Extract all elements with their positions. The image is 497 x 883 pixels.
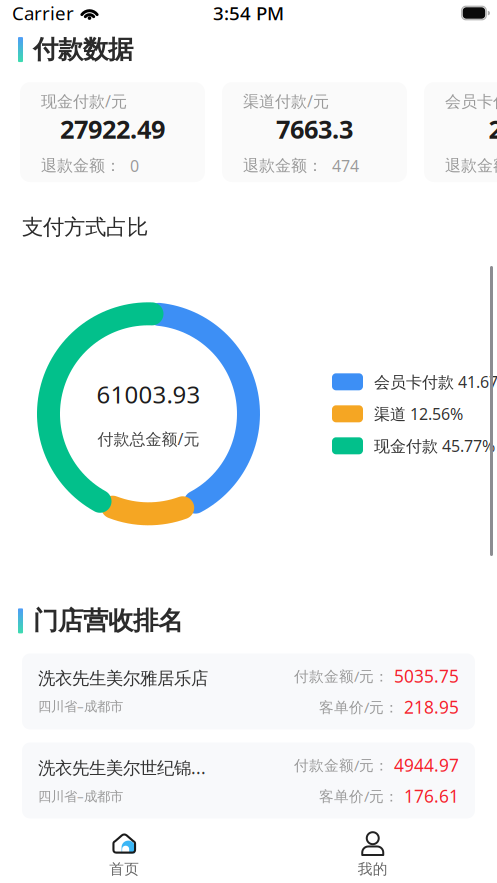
staticText: 218.95 (404, 695, 459, 718)
staticText: 5035.75 (394, 664, 459, 687)
staticText: 会员卡付款 41.67% (374, 371, 497, 392)
staticText: 0 (130, 155, 139, 176)
staticText: 会员卡付款/元 (445, 90, 497, 112)
staticText: 现金付款 45.77% (374, 435, 495, 456)
staticText: 洗衣先生美尔雅居乐店 (38, 668, 208, 689)
staticText: 客单价/元： (319, 697, 399, 717)
staticText: 四川省–成都市 (38, 697, 123, 715)
staticText: 付款数据 (33, 34, 133, 65)
staticText: 现金付款/元 (41, 90, 127, 112)
staticText: 2541 (488, 112, 497, 146)
staticText: 27922.49 (60, 112, 165, 146)
staticText: 付款金额/元： (294, 755, 389, 775)
staticText: 渠道付款/元 (243, 90, 329, 112)
staticText: 首页 (109, 860, 139, 878)
staticText: 付款总金额/元 (97, 428, 199, 449)
staticText: 3:54 PM (213, 1, 284, 25)
staticText: 我的 (358, 860, 388, 878)
staticText: 61003.93 (96, 378, 200, 410)
button[interactable]: 洗衣先生美尔世纪锦... (22, 742, 475, 818)
staticText: 退款金额： (41, 156, 121, 176)
staticText: 渠道 12.56% (374, 403, 463, 424)
staticText: 门店营收排名 (33, 605, 183, 636)
staticText: Carrier (12, 1, 74, 25)
staticText: 7663.3 (276, 112, 353, 146)
button[interactable]: 洗衣先生美尔雅居乐店 (22, 653, 475, 729)
staticText: 474 (332, 155, 359, 176)
staticText: 洗衣先生美尔世纪锦... (38, 756, 206, 779)
button[interactable]: 我的 (248, 824, 497, 883)
staticText: 176.61 (404, 784, 459, 807)
staticText: 四川省–成都市 (38, 787, 123, 805)
staticText: 支付方式占比 (22, 214, 148, 240)
staticText: 退款金额： (243, 156, 323, 176)
staticText: 退款金额： (445, 156, 497, 176)
staticText: 客单价/元： (319, 786, 399, 806)
staticText: 4944.97 (394, 753, 459, 776)
staticText: 付款金额/元： (294, 666, 389, 686)
button[interactable]: 首页 (0, 824, 248, 883)
